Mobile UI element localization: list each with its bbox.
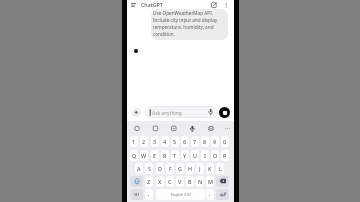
- button[interactable]: P: [221, 150, 229, 161]
- staticText: D: [158, 165, 162, 172]
- button[interactable]: .: [206, 189, 214, 200]
- staticText: A: [137, 165, 141, 172]
- staticText: Ask anything: [152, 110, 182, 117]
- staticText: E: [153, 152, 157, 159]
- staticText: Use OpenWeatherMap API.: [153, 10, 213, 16]
- staticText: 5: [173, 138, 177, 145]
- button[interactable]: 0: [221, 136, 229, 147]
- button[interactable]: 4: [161, 136, 169, 147]
- staticText: F: [169, 165, 172, 172]
- button[interactable]: 5: [171, 136, 179, 147]
- staticText: C: [168, 178, 172, 185]
- button[interactable]: 1: [130, 136, 138, 147]
- staticText: B: [188, 178, 192, 185]
- button[interactable]: H: [186, 163, 194, 174]
- button[interactable]: Ask anything: [145, 106, 218, 118]
- button[interactable]: G: [176, 163, 184, 174]
- button[interactable]: 8: [201, 136, 209, 147]
- staticText: 7: [193, 138, 197, 145]
- button[interactable]: 2: [140, 136, 148, 147]
- button[interactable]: ,: [145, 189, 153, 200]
- button[interactable]: I: [201, 150, 209, 161]
- staticText: J: [199, 165, 201, 172]
- button[interactable]: [216, 189, 229, 200]
- staticText: 0: [223, 138, 227, 145]
- button[interactable]: 6: [181, 136, 189, 147]
- button[interactable]: K: [206, 163, 214, 174]
- staticText: 1: [132, 138, 136, 145]
- button[interactable]: A: [135, 163, 143, 174]
- button[interactable]: O: [211, 150, 219, 161]
- button[interactable]: [130, 176, 143, 187]
- staticText: Q: [132, 152, 137, 159]
- staticText: English (US): [171, 192, 191, 197]
- staticText: G: [178, 165, 182, 172]
- staticText: L: [219, 165, 222, 172]
- button[interactable]: M: [206, 176, 214, 187]
- button[interactable]: C: [166, 176, 174, 187]
- staticText: ,: [148, 191, 150, 198]
- staticText: .: [209, 191, 211, 198]
- button[interactable]: S: [145, 163, 153, 174]
- staticText: V: [178, 178, 182, 185]
- button[interactable]: 7: [191, 136, 199, 147]
- button[interactable]: Z: [145, 176, 153, 187]
- button[interactable]: Q: [130, 150, 138, 161]
- button[interactable]: [127, 0, 234, 10]
- staticText: !#1: [134, 192, 140, 197]
- staticText: Include city input and display: [153, 17, 218, 23]
- staticText: 6: [183, 138, 187, 145]
- button[interactable]: V: [176, 176, 184, 187]
- button[interactable]: [219, 107, 230, 118]
- staticText: R: [163, 152, 167, 159]
- staticText: I: [204, 152, 206, 159]
- button[interactable]: W: [140, 150, 148, 161]
- staticText: 3: [153, 138, 157, 145]
- staticText: ChatGPT: [141, 1, 163, 8]
- button[interactable]: F: [166, 163, 174, 174]
- button[interactable]: N: [196, 176, 204, 187]
- button[interactable]: T: [171, 150, 179, 161]
- button[interactable]: U: [191, 150, 199, 161]
- staticText: K: [208, 165, 212, 172]
- button[interactable]: J: [196, 163, 204, 174]
- button[interactable]: 9: [211, 136, 219, 147]
- staticText: T: [173, 152, 177, 159]
- staticText: U: [193, 152, 197, 159]
- button[interactable]: E: [151, 150, 159, 161]
- staticText: condition.: [153, 31, 175, 37]
- staticText: S: [148, 165, 151, 172]
- staticText: 9: [213, 138, 217, 145]
- button[interactable]: [216, 176, 229, 187]
- staticText: W: [141, 152, 147, 159]
- button[interactable]: Y: [181, 150, 189, 161]
- button[interactable]: B: [186, 176, 194, 187]
- button[interactable]: 3: [151, 136, 159, 147]
- staticText: N: [198, 178, 203, 185]
- button[interactable]: !#1: [130, 189, 143, 200]
- button[interactable]: R: [161, 150, 169, 161]
- button[interactable]: [151, 9, 228, 40]
- staticText: H: [188, 165, 193, 172]
- button[interactable]: English (US): [156, 189, 205, 200]
- staticText: M: [208, 178, 213, 185]
- staticText: P: [223, 152, 227, 159]
- staticText: temperature, humidity, and: [153, 24, 214, 30]
- staticText: 2: [142, 138, 146, 145]
- button[interactable]: D: [156, 163, 164, 174]
- staticText: 8: [203, 138, 207, 145]
- button[interactable]: [132, 108, 141, 117]
- staticText: 4: [163, 138, 167, 145]
- staticText: X: [158, 178, 162, 185]
- staticText: O: [213, 152, 218, 159]
- staticText: Z: [147, 178, 151, 185]
- button[interactable]: X: [156, 176, 164, 187]
- staticText: Y: [183, 152, 187, 159]
- button[interactable]: L: [216, 163, 224, 174]
